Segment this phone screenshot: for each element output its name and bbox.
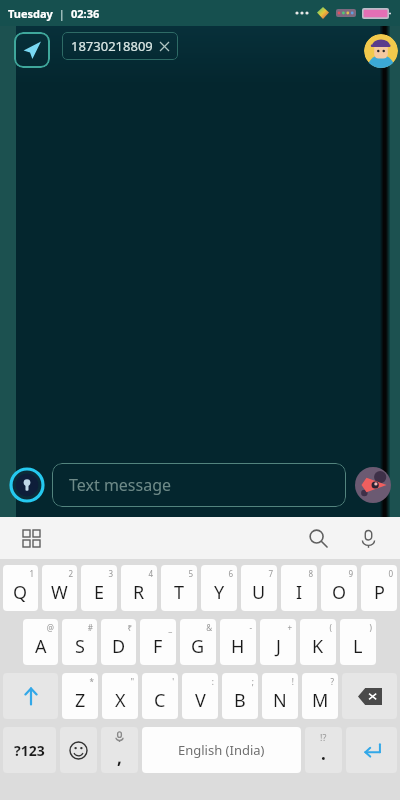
staticText: ): [369, 622, 372, 633]
staticText: 2: [68, 568, 73, 579]
button[interactable]: ?123: [2, 726, 57, 774]
staticText: 18730218809: [71, 37, 153, 55]
staticText: #: [87, 622, 93, 633]
staticText: English (India): [178, 741, 265, 759]
staticText: I: [296, 580, 303, 605]
button[interactable]: (: [299, 618, 337, 666]
button[interactable]: ?: [301, 672, 339, 720]
staticText: J: [276, 634, 281, 659]
staticText: |: [53, 6, 71, 21]
staticText: ': [172, 676, 174, 687]
button[interactable]: !: [261, 672, 299, 720]
staticText: :: [211, 676, 214, 687]
staticText: ?123: [14, 741, 45, 760]
staticText: T: [174, 580, 185, 605]
button[interactable]: Menu: [16, 523, 46, 553]
button[interactable]: Search: [302, 522, 334, 554]
staticText: H: [231, 634, 245, 659]
staticText: 7: [268, 568, 273, 579]
staticText: Z: [75, 688, 86, 713]
button[interactable]: 9: [320, 564, 358, 612]
staticText: Q: [13, 580, 28, 605]
button[interactable]: 4: [120, 564, 158, 612]
staticText: G: [191, 634, 205, 659]
button[interactable]: 2: [41, 564, 78, 612]
button[interactable]: 18730218809: [62, 32, 178, 60]
button[interactable]: 7: [240, 564, 278, 612]
staticText: +: [287, 622, 292, 633]
button[interactable]: ;: [221, 672, 259, 720]
button[interactable]: App: [14, 32, 50, 68]
staticText: ": [130, 676, 134, 687]
staticText: ₹: [127, 622, 132, 633]
button[interactable]: 3: [80, 564, 118, 612]
staticText: U: [252, 580, 266, 605]
staticText: 8: [308, 568, 313, 579]
staticText: ;: [251, 676, 254, 687]
button[interactable]: 1: [2, 564, 39, 612]
staticText: W: [51, 580, 68, 605]
button[interactable]: ₹: [100, 618, 137, 666]
button[interactable]: !?: [304, 726, 343, 774]
staticText: X: [115, 688, 126, 713]
button[interactable]: ': [141, 672, 179, 720]
button[interactable]: 8: [280, 564, 318, 612]
staticText: N: [273, 688, 287, 713]
staticText: F: [153, 634, 163, 659]
staticText: 4: [148, 568, 153, 579]
staticText: ?: [330, 676, 334, 687]
button[interactable]: Backspace: [341, 672, 398, 720]
staticText: 0: [388, 568, 393, 579]
staticText: !: [291, 676, 294, 687]
staticText: M: [312, 688, 329, 713]
staticText: !?: [320, 731, 327, 743]
staticText: _: [168, 622, 172, 633]
button[interactable]: Emoji: [59, 726, 98, 774]
button[interactable]: ": [101, 672, 139, 720]
button[interactable]: Enter: [345, 726, 398, 774]
button[interactable]: _: [139, 618, 177, 666]
staticText: *: [89, 676, 94, 687]
button[interactable]: 0: [360, 564, 398, 612]
staticText: Text message: [69, 474, 172, 496]
button[interactable]: #: [61, 618, 98, 666]
staticText: @: [46, 622, 54, 633]
staticText: V: [195, 688, 206, 713]
button[interactable]: *: [61, 672, 99, 720]
button[interactable]: ,: [100, 726, 139, 774]
staticText: L: [353, 634, 363, 659]
button[interactable]: ): [339, 618, 377, 666]
button[interactable]: Attach: [8, 466, 46, 504]
staticText: P: [374, 580, 385, 605]
staticText: C: [154, 688, 166, 713]
button[interactable]: Send: [354, 466, 392, 504]
staticText: 02:36: [71, 6, 100, 21]
button[interactable]: &: [179, 618, 217, 666]
button[interactable]: Text message: [52, 463, 346, 507]
staticText: 5: [188, 568, 193, 579]
button[interactable]: Shift: [2, 672, 59, 720]
staticText: B: [234, 688, 246, 713]
button[interactable]: Voice input: [352, 522, 384, 554]
staticText: ,: [117, 746, 122, 769]
staticText: E: [94, 580, 105, 605]
button[interactable]: 6: [200, 564, 238, 612]
staticText: R: [133, 580, 145, 605]
staticText: &: [206, 622, 212, 633]
staticText: -: [249, 622, 252, 633]
button[interactable]: +: [259, 618, 297, 666]
staticText: 1: [29, 568, 34, 579]
staticText: D: [112, 634, 126, 659]
button[interactable]: 5: [160, 564, 198, 612]
staticText: 9: [348, 568, 353, 579]
staticText: Tuesday: [8, 6, 53, 21]
staticText: K: [312, 634, 324, 659]
button[interactable]: Profile: [364, 34, 398, 68]
button[interactable]: :: [181, 672, 219, 720]
button[interactable]: @: [22, 618, 59, 666]
staticText: O: [332, 580, 347, 605]
staticText: A: [35, 634, 47, 659]
staticText: .: [321, 742, 326, 765]
button[interactable]: English (India): [142, 727, 301, 773]
button[interactable]: -: [219, 618, 257, 666]
